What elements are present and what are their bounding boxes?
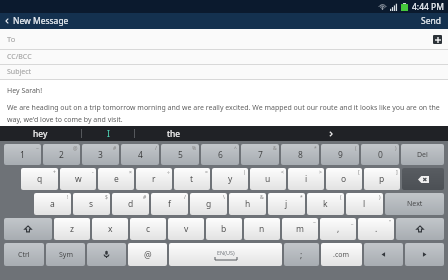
- button[interactable]: q: [21, 168, 58, 190]
- button[interactable]: z: [54, 218, 90, 240]
- button[interactable]: Subject: [0, 65, 448, 79]
- button[interactable]: 6: [201, 144, 239, 165]
- staticText: .: [375, 223, 378, 235]
- staticText: =: [205, 169, 208, 176]
- staticText: #: [113, 145, 117, 152]
- button[interactable]: Sym: [46, 243, 85, 266]
- button[interactable]: p: [364, 168, 400, 190]
- staticText: ;: [300, 249, 303, 261]
- staticText: Del: [417, 150, 428, 160]
- staticText: d: [128, 198, 134, 210]
- button[interactable]: 0: [361, 144, 399, 165]
- button[interactable]: 4: [121, 144, 159, 165]
- staticText: p: [379, 173, 385, 185]
- button[interactable]: ;: [284, 243, 319, 266]
- button[interactable]: [364, 243, 403, 266]
- staticText: f: [168, 198, 171, 210]
- staticText: j: [285, 198, 288, 210]
- button[interactable]: [87, 243, 126, 266]
- staticText: 9: [338, 149, 343, 161]
- staticText: 2: [59, 149, 64, 161]
- staticText: 0: [378, 149, 383, 161]
- button[interactable]: 1: [4, 144, 41, 165]
- button[interactable]: .com: [321, 243, 362, 266]
- button[interactable]: Add recipient: [433, 35, 442, 44]
- staticText: To: [7, 34, 16, 44]
- button[interactable]: o: [326, 168, 362, 190]
- button[interactable]: [405, 243, 444, 266]
- button[interactable]: [402, 168, 444, 190]
- staticText: Sym: [59, 250, 73, 260]
- staticText: (: [355, 145, 357, 152]
- button[interactable]: ,: [320, 218, 356, 240]
- button[interactable]: h: [229, 193, 266, 215]
- staticText: $: [105, 194, 108, 201]
- staticText: v: [184, 223, 189, 235]
- button[interactable]: y: [212, 168, 248, 190]
- button[interactable]: n: [244, 218, 280, 240]
- button[interactable]: Send: [414, 13, 448, 29]
- button[interactable]: l: [346, 193, 383, 215]
- staticText: 4: [138, 149, 143, 161]
- button[interactable]: I: [82, 126, 134, 141]
- button[interactable]: 9: [321, 144, 359, 165]
- staticText: ]: [396, 169, 398, 176]
- staticText: EN(US): [217, 249, 235, 256]
- button[interactable]: 3: [82, 144, 119, 165]
- button[interactable]: the: [135, 126, 213, 141]
- staticText: Next: [407, 199, 423, 209]
- button[interactable]: k: [307, 193, 344, 215]
- button[interactable]: t: [174, 168, 210, 190]
- staticText: u: [265, 173, 271, 185]
- button[interactable]: .: [358, 218, 394, 240]
- button[interactable]: CC/BCC: [0, 50, 448, 64]
- button[interactable]: f: [151, 193, 188, 215]
- staticText: CC/BCC: [7, 52, 32, 62]
- button[interactable]: x: [92, 218, 128, 240]
- button[interactable]: s: [73, 193, 110, 215]
- button[interactable]: r: [136, 168, 172, 190]
- staticText: o: [341, 173, 347, 185]
- button[interactable]: w: [60, 168, 96, 190]
- staticText: /: [184, 194, 186, 201]
- button[interactable]: More suggestions: [213, 126, 448, 141]
- button[interactable]: e: [98, 168, 134, 190]
- staticText: 6: [218, 149, 223, 161]
- button[interactable]: m: [282, 218, 318, 240]
- staticText: ÷: [167, 169, 170, 176]
- staticText: -: [92, 169, 94, 176]
- button[interactable]: hey: [0, 126, 81, 141]
- staticText: .com: [333, 250, 350, 260]
- button[interactable]: c: [130, 218, 166, 240]
- staticText: x: [108, 223, 113, 235]
- button[interactable]: EN(US): [169, 243, 282, 266]
- button[interactable]: v: [168, 218, 204, 240]
- button[interactable]: d: [112, 193, 149, 215]
- staticText: n: [259, 223, 265, 235]
- button[interactable]: i: [288, 168, 324, 190]
- button[interactable]: 7: [241, 144, 279, 165]
- button[interactable]: 2: [43, 144, 80, 165]
- button[interactable]: New Message: [0, 13, 75, 29]
- staticText: ): [379, 194, 381, 201]
- button[interactable]: 5: [161, 144, 199, 165]
- button[interactable]: Next: [385, 193, 444, 215]
- button[interactable]: Del: [401, 144, 444, 165]
- button[interactable]: b: [206, 218, 242, 240]
- staticText: We are heading out on a trip tomorrow mo…: [7, 103, 441, 124]
- button[interactable]: u: [250, 168, 286, 190]
- button[interactable]: [4, 218, 52, 240]
- staticText: w: [75, 173, 82, 185]
- button[interactable]: a: [34, 193, 71, 215]
- button[interactable]: 8: [281, 144, 319, 165]
- button[interactable]: g: [190, 193, 227, 215]
- button[interactable]: Ctrl: [4, 243, 44, 266]
- staticText: 3: [98, 149, 103, 161]
- staticText: y: [228, 173, 233, 185]
- button[interactable]: To: [0, 29, 448, 49]
- button[interactable]: [396, 218, 444, 240]
- button[interactable]: @: [128, 243, 167, 266]
- button[interactable]: j: [268, 193, 305, 215]
- staticText: k: [323, 198, 328, 210]
- staticText: the: [167, 128, 181, 140]
